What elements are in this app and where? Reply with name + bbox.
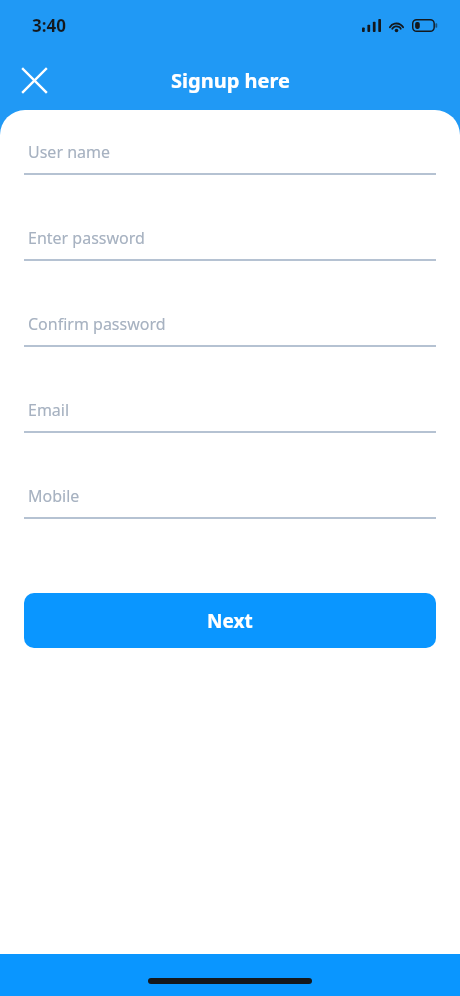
staticText: 3:40 <box>32 14 66 37</box>
staticText: Mobile <box>28 485 80 507</box>
button[interactable]: Confirm password <box>24 303 436 389</box>
staticText: Enter password <box>28 227 145 249</box>
button[interactable]: Mobile <box>24 475 436 561</box>
button[interactable]: User name <box>24 131 436 217</box>
staticText: Signup here <box>171 67 290 94</box>
staticText: Next <box>207 608 253 634</box>
button[interactable]: Next <box>24 593 436 648</box>
staticText: Confirm password <box>28 313 166 335</box>
button[interactable]: Enter password <box>24 217 436 303</box>
button[interactable]: Email <box>24 389 436 475</box>
staticText: User name <box>28 141 111 163</box>
button[interactable]: Close <box>12 58 56 102</box>
staticText: Email <box>28 399 70 421</box>
